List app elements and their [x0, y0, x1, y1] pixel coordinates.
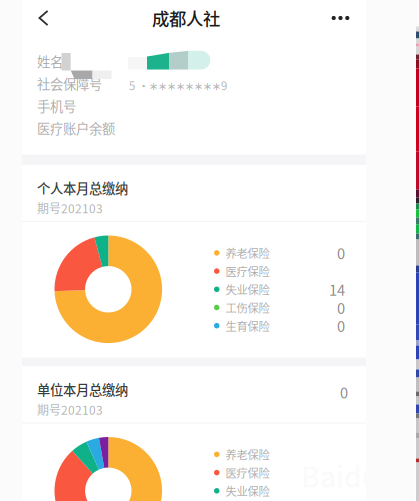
- staticText: 养老保险: [225, 446, 269, 463]
- staticText: 医疗账户余额: [37, 118, 115, 138]
- staticText: 医疗保险: [225, 464, 269, 481]
- staticText: 0: [337, 242, 345, 263]
- staticText: 5 ·∗∗∗∗∗∗∗∗9: [129, 77, 227, 93]
- staticText: 生育保险: [225, 317, 269, 334]
- staticText: 成都人社: [152, 5, 220, 31]
- staticText: Baidu 经验: [301, 455, 419, 495]
- staticText: 14: [329, 279, 345, 300]
- staticText: 0: [337, 297, 345, 318]
- staticText: 期号202103: [37, 199, 103, 217]
- staticText: jingyan.baidu.com: [301, 496, 418, 501]
- button[interactable]: More: [324, 0, 357, 36]
- staticText: 个人本月总缴纳: [37, 178, 128, 197]
- staticText: 期号202103: [37, 401, 103, 418]
- staticText: 姓名: [37, 51, 63, 71]
- staticText: 单位本月总缴纳: [37, 379, 128, 399]
- staticText: 手机号: [37, 96, 76, 115]
- staticText: 0: [337, 315, 345, 336]
- staticText: 失业保险: [225, 483, 269, 499]
- staticText: 失业保险: [225, 281, 269, 297]
- staticText: 医疗保险: [225, 263, 269, 279]
- button[interactable]: Back: [27, 0, 60, 36]
- staticText: 养老保险: [225, 245, 269, 261]
- staticText: 0: [340, 381, 348, 403]
- staticText: 工伤保险: [225, 299, 269, 316]
- staticText: 社会保障号: [37, 74, 102, 93]
